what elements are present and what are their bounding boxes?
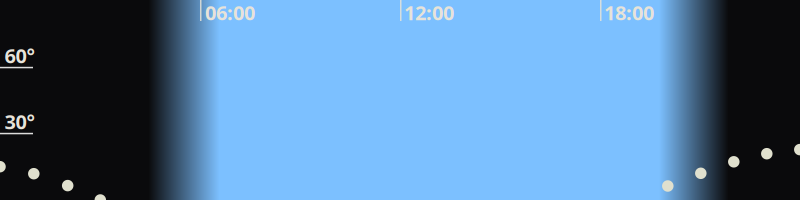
staticText: 30° xyxy=(4,108,34,135)
staticText: 60° xyxy=(4,42,34,69)
staticText: 12:00 xyxy=(404,0,454,26)
staticText: 06:00 xyxy=(205,0,255,26)
staticText: 18:00 xyxy=(604,0,654,26)
